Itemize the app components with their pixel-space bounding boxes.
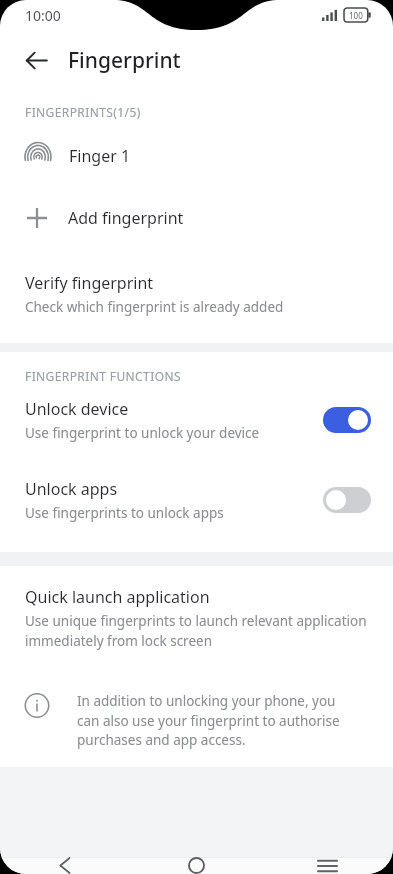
button[interactable]: Unlock apps [0, 472, 393, 528]
staticText: Finger 1 [69, 145, 131, 167]
staticText: 100 [349, 10, 363, 21]
staticText: Check which fingerprint is already added [25, 298, 284, 316]
staticText: Use fingerprints to unlock apps [25, 504, 224, 522]
staticText: FINGERPRINTS(1/5) [25, 104, 141, 120]
staticText: In addition to unlocking your phone, you… [77, 692, 353, 749]
button[interactable]: Off [323, 487, 371, 513]
button[interactable]: Unlock device [0, 392, 393, 448]
button[interactable]: Recent apps [262, 857, 393, 874]
staticText: Quick launch application [25, 586, 210, 608]
staticText: Unlock apps [25, 478, 118, 500]
staticText: 10:00 [25, 6, 61, 25]
button[interactable]: Finger 1 [0, 128, 393, 184]
staticText: Use unique fingerprints to launch releva… [25, 612, 371, 650]
staticText: Add fingerprint [68, 207, 184, 229]
button[interactable]: Back [14, 38, 58, 82]
staticText: FINGERPRINT FUNCTIONS [25, 368, 181, 384]
staticText: Use fingerprint to unlock your device [25, 424, 260, 442]
button[interactable]: On [323, 407, 371, 433]
button[interactable]: Verify fingerprint [0, 268, 393, 326]
staticText: Unlock device [25, 398, 129, 420]
staticText: Fingerprint [68, 46, 181, 75]
button[interactable]: Add fingerprint [0, 190, 393, 246]
button[interactable]: Back [0, 857, 131, 874]
button[interactable]: Quick launch application [0, 566, 393, 658]
staticText: Verify fingerprint [25, 272, 154, 294]
button[interactable]: Home [131, 857, 262, 874]
